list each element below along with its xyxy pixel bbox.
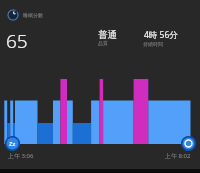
staticText: 持續時間 [143, 41, 163, 47]
staticText: 睡眠分數 [23, 12, 43, 18]
other: Sleep start [5, 136, 20, 151]
staticText: 品質 [98, 40, 108, 46]
staticText: 上午 8:02 [165, 152, 191, 160]
staticText: 上午 3:06 [8, 152, 34, 160]
staticText: 65 [6, 28, 28, 54]
other: Wake time [181, 136, 196, 151]
staticText: Zz [9, 140, 16, 148]
staticText: 普通 [98, 29, 117, 41]
button[interactable]: Sleep score [7, 9, 19, 21]
staticText: 4時 56分 [144, 29, 178, 41]
